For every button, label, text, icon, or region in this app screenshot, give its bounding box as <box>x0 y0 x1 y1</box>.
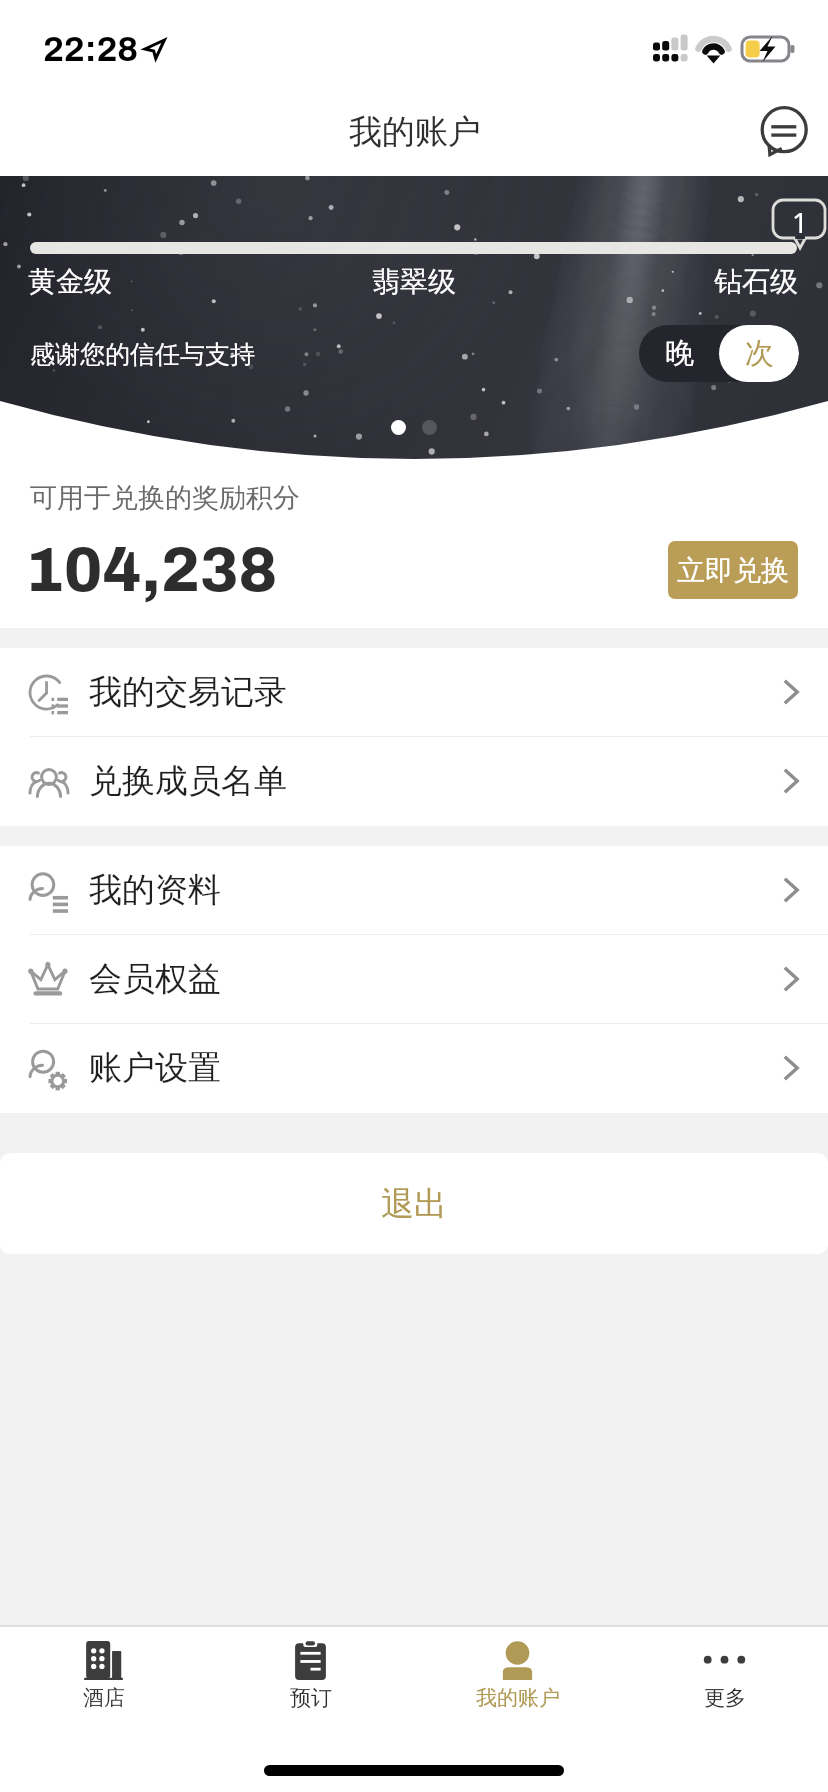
staticText: 104,238 <box>25 537 278 604</box>
button[interactable]: 预订 <box>207 1627 414 1755</box>
button[interactable]: 我的交易记录 <box>0 648 828 736</box>
staticText: 感谢您的信任与支持 <box>30 339 255 370</box>
staticText: 黄金级 <box>28 264 112 299</box>
staticText: 账户设置 <box>89 1047 221 1089</box>
button[interactable]: 账户设置 <box>0 1024 828 1112</box>
staticText: 酒店 <box>83 1685 125 1711</box>
staticText: 兑换成员名单 <box>89 760 287 802</box>
staticText: 翡翠级 <box>372 264 456 299</box>
staticText: 可用于兑换的奖励积分 <box>30 481 300 515</box>
button[interactable]: 会员权益 <box>0 935 828 1023</box>
button[interactable]: 酒店 <box>0 1627 207 1755</box>
button[interactable]: 我的资料 <box>0 846 828 934</box>
staticText: 我的资料 <box>89 869 221 911</box>
staticText: 更多 <box>704 1685 746 1711</box>
staticText: 我的账户 <box>349 111 481 153</box>
staticText: 预订 <box>290 1685 332 1711</box>
button[interactable]: 退出 <box>0 1153 828 1254</box>
staticText: 会员权益 <box>89 958 221 1000</box>
staticText: 次 <box>745 335 774 372</box>
staticText: 钻石级 <box>714 264 798 299</box>
staticText: 退出 <box>381 1183 447 1225</box>
staticText: 1 <box>792 203 809 241</box>
staticText: 我的交易记录 <box>89 671 287 713</box>
staticText: 晚 <box>665 335 694 372</box>
button[interactable]: 兑换成员名单 <box>0 737 828 825</box>
button[interactable]: 更多 <box>621 1627 828 1755</box>
button[interactable]: 我的账户 <box>414 1627 621 1755</box>
button[interactable]: 晚 <box>639 325 799 382</box>
button[interactable]: Messages <box>752 96 816 160</box>
staticText: 立即兑换 <box>677 553 789 588</box>
button[interactable]: 立即兑换 <box>668 541 798 599</box>
staticText: 我的账户 <box>476 1685 560 1711</box>
staticText: 22:28 <box>43 30 139 68</box>
